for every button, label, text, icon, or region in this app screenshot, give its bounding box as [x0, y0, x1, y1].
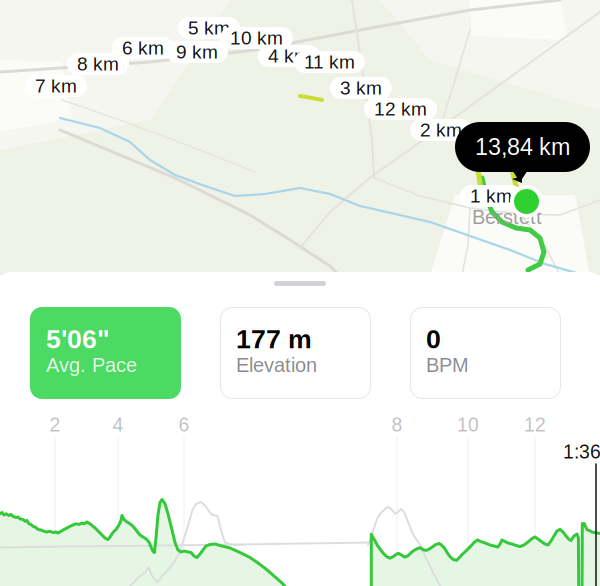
staticText: 5'06"	[46, 324, 110, 354]
staticText: 12 km	[374, 98, 427, 120]
staticText: 9 km	[176, 41, 218, 63]
staticText: 1 km	[470, 185, 512, 207]
button[interactable]: 5'06"	[30, 307, 181, 399]
staticText: 13,84 km	[475, 134, 570, 160]
staticText: Berstett	[472, 206, 542, 228]
staticText: 5 km	[188, 17, 230, 39]
staticText: Elevation	[236, 354, 317, 376]
staticText: 7 km	[35, 75, 77, 97]
staticText: 8	[391, 414, 402, 436]
staticText: 177 m	[236, 324, 312, 354]
staticText: BPM	[426, 354, 469, 376]
staticText: 4	[112, 414, 123, 436]
staticText: 11 km	[304, 51, 355, 73]
staticText: 6	[178, 414, 189, 436]
staticText: 10 km	[230, 27, 283, 49]
button[interactable]: 0	[410, 307, 561, 399]
staticText: 6 km	[122, 37, 164, 59]
staticText: 12	[524, 414, 546, 436]
staticText: 1:36	[563, 441, 600, 463]
staticText: 10	[457, 414, 479, 436]
staticText: 8 km	[77, 53, 119, 75]
button[interactable]: 177 m	[220, 307, 371, 399]
staticText: 2 km	[420, 119, 462, 141]
staticText: 0	[426, 324, 441, 354]
staticText: 2	[49, 414, 60, 436]
staticText: 3 km	[340, 77, 382, 99]
staticText: 4 km	[268, 45, 310, 67]
staticText: Avg. Pace	[46, 354, 137, 376]
